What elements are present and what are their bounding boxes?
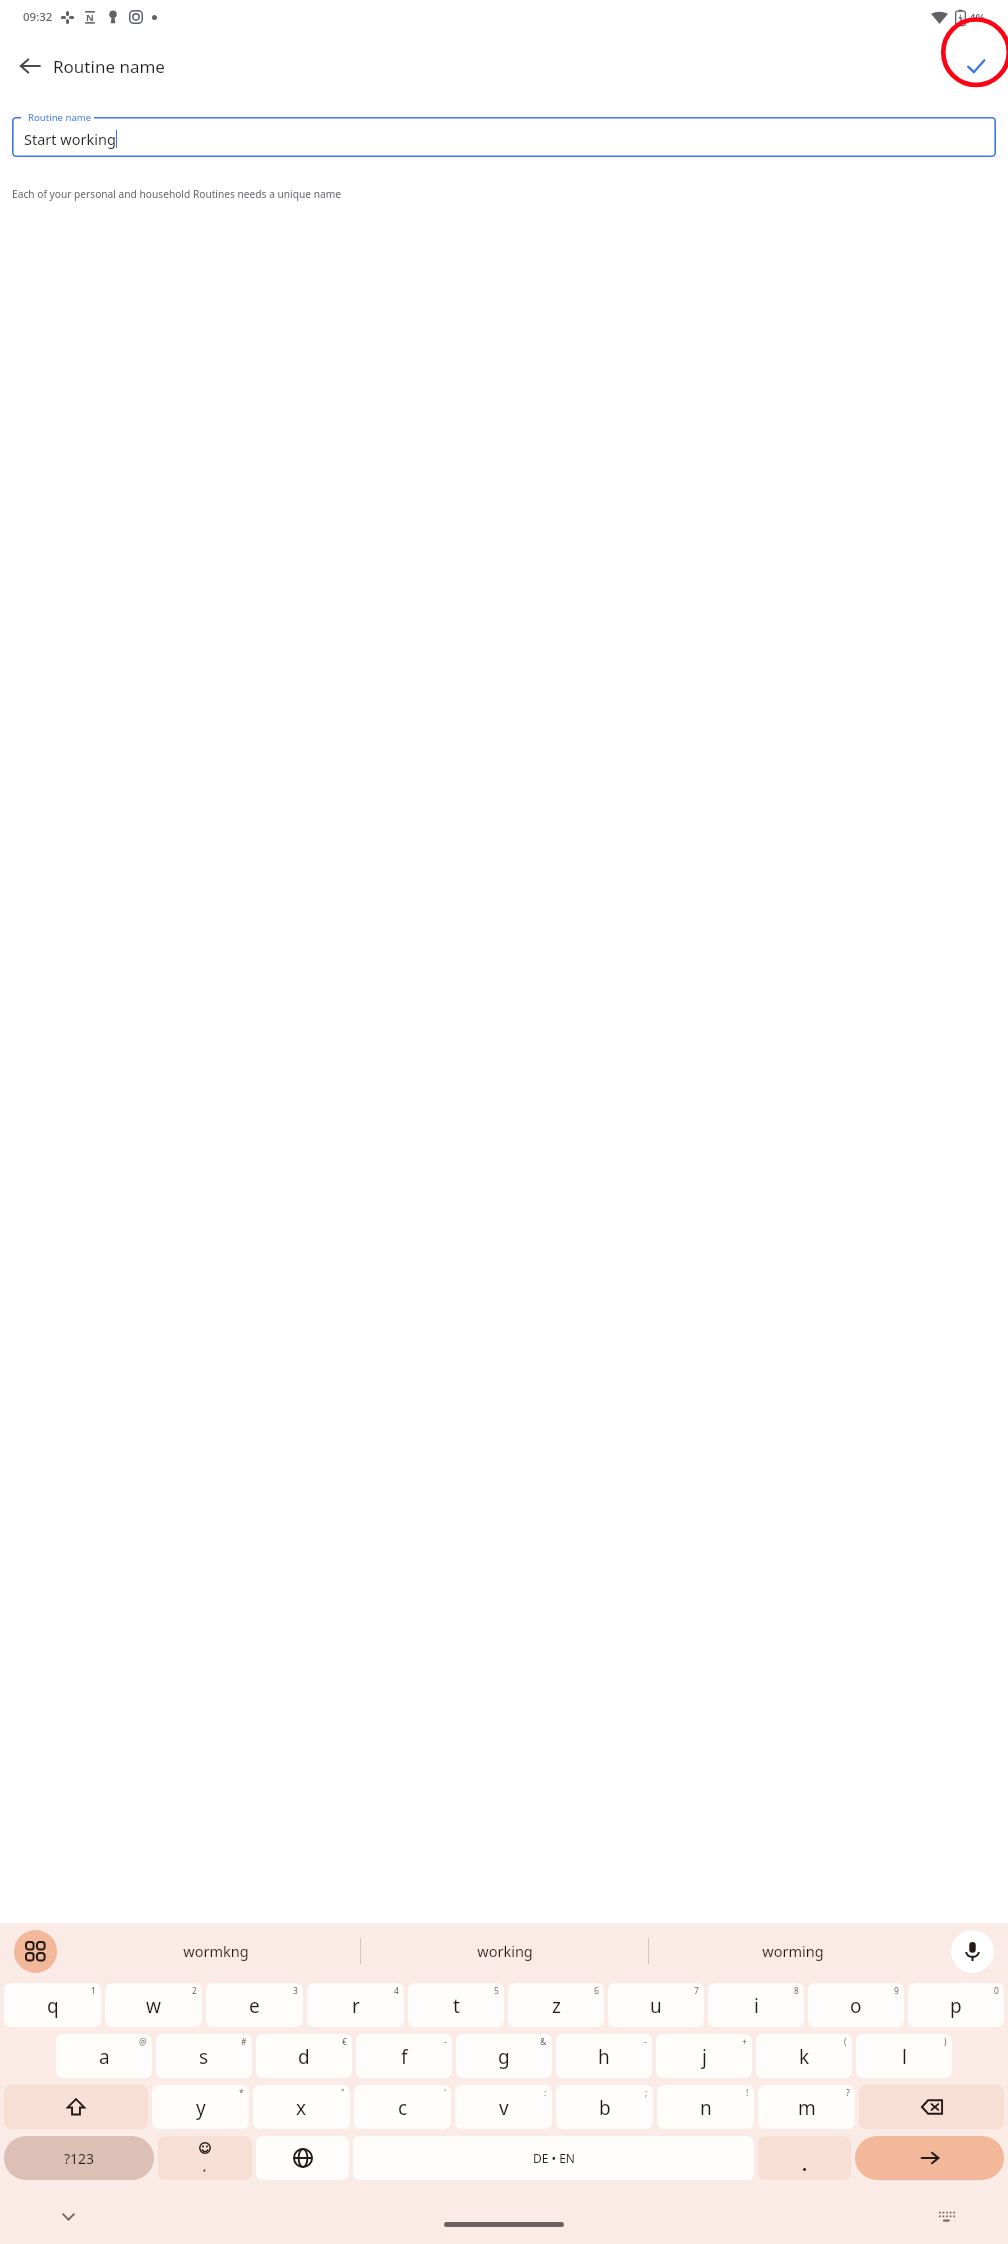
button[interactable]: o — [808, 1983, 904, 2027]
button[interactable]: s — [156, 2034, 252, 2078]
button[interactable]: q — [4, 1983, 101, 2027]
staticText: j — [702, 2044, 707, 2070]
button[interactable]: worming — [649, 1923, 936, 1979]
staticText: ?123 — [64, 2149, 95, 2168]
staticText: & — [540, 2036, 547, 2048]
staticText: 4% — [969, 10, 986, 26]
staticText: 3 — [293, 1985, 298, 1997]
button[interactable]: a — [56, 2034, 152, 2078]
staticText: ; — [645, 2087, 648, 2099]
button[interactable]: Voice input — [951, 1930, 994, 1973]
button[interactable]: h — [556, 2034, 652, 2078]
button[interactable]: u — [608, 1983, 704, 2027]
button[interactable]: c — [354, 2085, 451, 2129]
staticText: ) — [944, 2036, 947, 2048]
staticText: x — [296, 2095, 307, 2121]
button[interactable]: Switch keyboard — [928, 2198, 964, 2234]
staticText: @ — [139, 2036, 147, 2048]
button[interactable]: y — [152, 2085, 249, 2129]
button[interactable]: n — [657, 2085, 754, 2129]
button[interactable]: v — [455, 2085, 552, 2129]
button[interactable]: DE • EN — [353, 2136, 754, 2180]
button[interactable]: Emoji — [158, 2136, 252, 2180]
button[interactable]: Next — [855, 2136, 1004, 2180]
staticText: s — [199, 2044, 209, 2070]
button[interactable]: i — [708, 1983, 804, 2027]
button[interactable]: . — [758, 2136, 851, 2180]
staticText: . — [802, 2152, 808, 2177]
staticText: 5 — [494, 1985, 499, 1997]
staticText: k — [799, 2044, 810, 2070]
button[interactable]: l — [856, 2034, 952, 2078]
button[interactable]: r — [307, 1983, 404, 2027]
staticText: + — [742, 2036, 747, 2048]
button[interactable]: wormkng — [72, 1923, 360, 1979]
staticText: 2 — [192, 1985, 197, 1997]
staticText: o — [850, 1993, 862, 2019]
staticText: g — [498, 2044, 510, 2070]
staticText: h — [598, 2044, 610, 2070]
button[interactable]: Change language — [256, 2136, 349, 2180]
button[interactable]: ?123 — [4, 2136, 154, 2180]
staticText: ' — [444, 2087, 446, 2099]
staticText: 1 — [91, 1985, 96, 1997]
button[interactable]: d — [256, 2034, 352, 2078]
button[interactable]: Start working — [12, 117, 996, 157]
staticText: N — [86, 11, 94, 24]
staticText: ? — [846, 2087, 850, 2099]
button[interactable]: g — [456, 2034, 552, 2078]
button[interactable]: working — [361, 1923, 648, 1979]
staticText: n — [700, 2095, 712, 2121]
staticText: r — [352, 1993, 360, 2019]
staticText: z — [552, 1993, 561, 2019]
button[interactable]: w — [105, 1983, 202, 2027]
staticText: c — [398, 2095, 408, 2121]
staticText: b — [599, 2095, 611, 2121]
button[interactable]: Hide keyboard — [50, 2198, 86, 2234]
button[interactable]: Keyboard modes — [14, 1930, 57, 1973]
staticText: Routine name — [53, 55, 165, 78]
button[interactable]: p — [908, 1983, 1004, 2027]
staticText: m — [798, 2095, 816, 2121]
staticText: Routine name — [28, 111, 92, 124]
staticText: p — [950, 1993, 962, 2019]
button[interactable]: x — [253, 2085, 350, 2129]
staticText: working — [477, 1941, 533, 1961]
staticText: e — [249, 1993, 260, 2019]
staticText: a — [99, 2044, 110, 2070]
staticText: , — [203, 2159, 207, 2174]
staticText: - — [444, 2036, 447, 2048]
button[interactable]: Back — [6, 42, 54, 90]
staticText: 8 — [794, 1985, 799, 1997]
button[interactable]: b — [556, 2085, 653, 2129]
staticText: 6 — [594, 1985, 599, 1997]
button[interactable]: t — [408, 1983, 504, 2027]
button[interactable]: e — [206, 1983, 303, 2027]
button[interactable]: m — [758, 2085, 855, 2129]
staticText: u — [650, 1993, 662, 2019]
button[interactable]: Backspace — [859, 2085, 1004, 2129]
staticText: v — [499, 2095, 509, 2121]
staticText: € — [342, 2036, 347, 2048]
staticText: Start working — [24, 129, 116, 149]
staticText: y — [196, 2095, 206, 2121]
button[interactable]: Shift — [4, 2085, 148, 2129]
staticText: worming — [762, 1941, 824, 1961]
staticText: w — [146, 1993, 161, 2019]
staticText: Each of your personal and household Rout… — [12, 187, 341, 201]
staticText: ! — [746, 2087, 749, 2099]
button[interactable]: z — [508, 1983, 604, 2027]
button[interactable]: f — [356, 2034, 452, 2078]
staticText: * — [239, 2087, 244, 2099]
staticText: 09:32 — [23, 9, 53, 25]
button[interactable]: k — [756, 2034, 852, 2078]
staticText: 7 — [694, 1985, 699, 1997]
staticText: # — [241, 2036, 247, 2048]
button[interactable]: j — [656, 2034, 752, 2078]
staticText: DE • EN — [533, 2150, 575, 2166]
staticText: t — [453, 1993, 460, 2019]
staticText: d — [298, 2044, 310, 2070]
staticText: : — [544, 2087, 547, 2099]
button[interactable]: Confirm — [952, 42, 1000, 90]
staticText: - — [644, 2036, 647, 2048]
